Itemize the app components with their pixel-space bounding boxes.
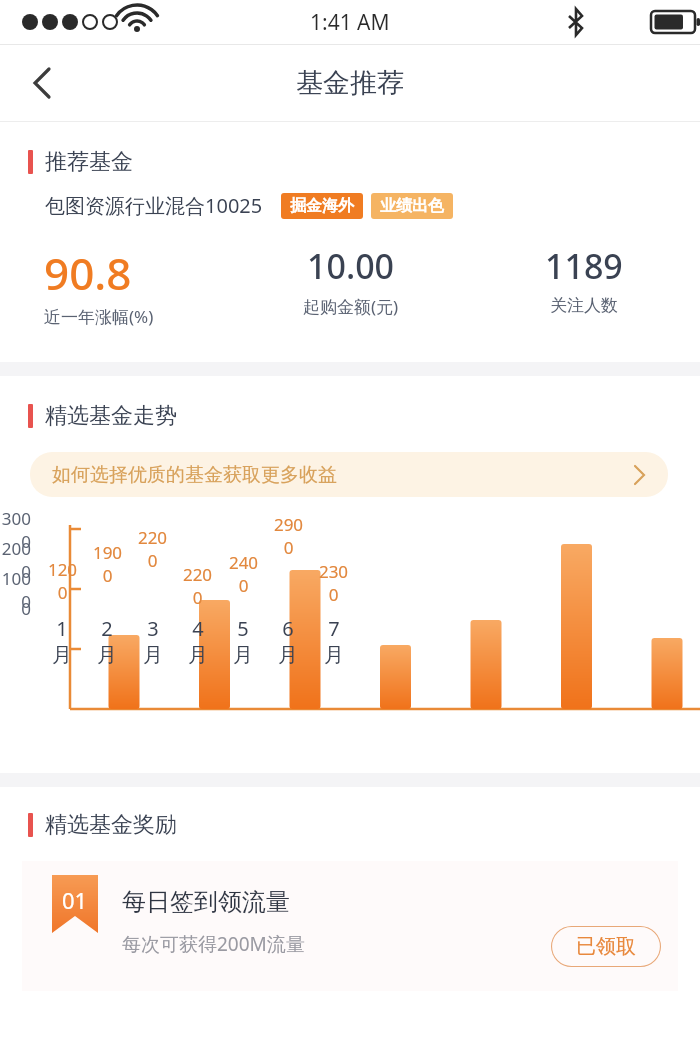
staticText: 6月 xyxy=(273,615,303,668)
staticText: 每日签到领流量 xyxy=(122,887,290,917)
staticText: 5月 xyxy=(228,615,258,668)
button[interactable]: Back xyxy=(12,55,68,111)
staticText: 3月 xyxy=(138,615,168,668)
staticText: 2200 xyxy=(181,563,214,609)
staticText: 基金推荐 xyxy=(296,66,404,100)
staticText: 3000 xyxy=(0,507,31,553)
button[interactable]: 掘金海外 xyxy=(281,193,363,219)
staticText: 2000 xyxy=(0,537,31,583)
staticText: 精选基金奖励 xyxy=(45,811,177,839)
staticText: 90.8 xyxy=(44,243,132,303)
staticText: 包图资源行业混合10025 xyxy=(45,192,263,219)
staticText: 10.00 xyxy=(307,243,395,289)
staticText: 1:41 AM xyxy=(310,8,390,37)
button[interactable]: 如何选择优质的基金获取更多收益 xyxy=(30,452,668,497)
staticText: 精选基金走势 xyxy=(45,402,177,430)
staticText: 1月 xyxy=(47,615,77,668)
staticText: 业绩出色 xyxy=(380,196,444,216)
button[interactable]: 已领取 xyxy=(551,926,661,967)
staticText: 1189 xyxy=(545,243,623,289)
button[interactable]: 业绩出色 xyxy=(371,193,453,219)
staticText: 0 xyxy=(0,597,31,620)
staticText: 2900 xyxy=(272,513,305,559)
staticText: 2月 xyxy=(92,615,122,668)
staticText: 已领取 xyxy=(576,934,636,959)
staticText: 每次可获得200M流量 xyxy=(122,931,305,957)
staticText: 起购金额(元) xyxy=(303,295,399,318)
staticText: 2300 xyxy=(317,560,350,606)
staticText: 1200 xyxy=(46,558,79,604)
staticText: 关注人数 xyxy=(550,295,618,316)
staticText: 2200 xyxy=(136,526,169,572)
staticText: 推荐基金 xyxy=(45,148,133,176)
staticText: 4月 xyxy=(183,615,213,668)
button[interactable]: 01 xyxy=(22,861,678,991)
staticText: 01 xyxy=(62,885,88,915)
staticText: 近一年涨幅(%) xyxy=(44,305,154,328)
staticText: 1900 xyxy=(91,541,124,587)
staticText: 1000 xyxy=(0,567,31,613)
staticText: 7月 xyxy=(319,615,349,668)
staticText: 2400 xyxy=(227,551,260,597)
staticText: 掘金海外 xyxy=(290,196,354,216)
staticText: 如何选择优质的基金获取更多收益 xyxy=(52,463,337,487)
